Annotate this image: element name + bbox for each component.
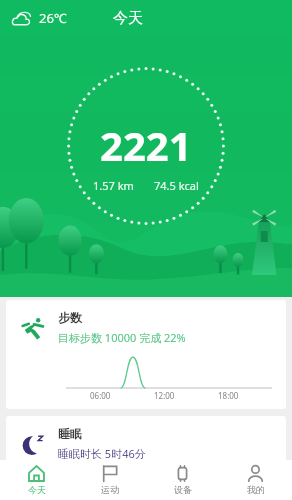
staticText: 我的 — [247, 484, 265, 495]
staticText: 1.57 km — [93, 178, 134, 193]
staticText: 睡眠时长 5时46分 — [58, 446, 146, 461]
staticText: 26℃ — [39, 9, 67, 27]
other: Sleep — [20, 431, 46, 457]
button[interactable]: Today — [0, 460, 73, 500]
button[interactable]: Steps — [6, 300, 286, 409]
button[interactable]: Exercise — [73, 460, 146, 500]
staticText: 18:00 — [218, 390, 239, 401]
other: Device — [174, 465, 191, 482]
staticText: 12:00 — [154, 390, 175, 401]
button[interactable]: Profile — [219, 460, 292, 500]
staticText: 运动 — [101, 484, 119, 495]
staticText: 步数 — [58, 310, 82, 325]
button[interactable]: Weather — [8, 5, 71, 31]
staticText: 2221 — [100, 118, 192, 172]
button[interactable]: Device — [146, 460, 219, 500]
other: Profile — [247, 465, 264, 482]
button[interactable]: Sleep — [6, 416, 286, 495]
staticText: 今天 — [113, 9, 143, 28]
other: Today — [28, 465, 45, 482]
staticText: 06:00 — [90, 390, 111, 401]
staticText: 74.5 kcal — [154, 178, 199, 193]
other: Weather — [12, 10, 34, 26]
other: Steps — [20, 315, 46, 341]
staticText: 今天 — [28, 484, 46, 495]
staticText: 目标步数 10000 完成 22% — [58, 330, 186, 345]
other: Exercise — [101, 465, 118, 482]
staticText: 睡眠 — [58, 426, 82, 441]
staticText: 设备 — [174, 484, 192, 495]
